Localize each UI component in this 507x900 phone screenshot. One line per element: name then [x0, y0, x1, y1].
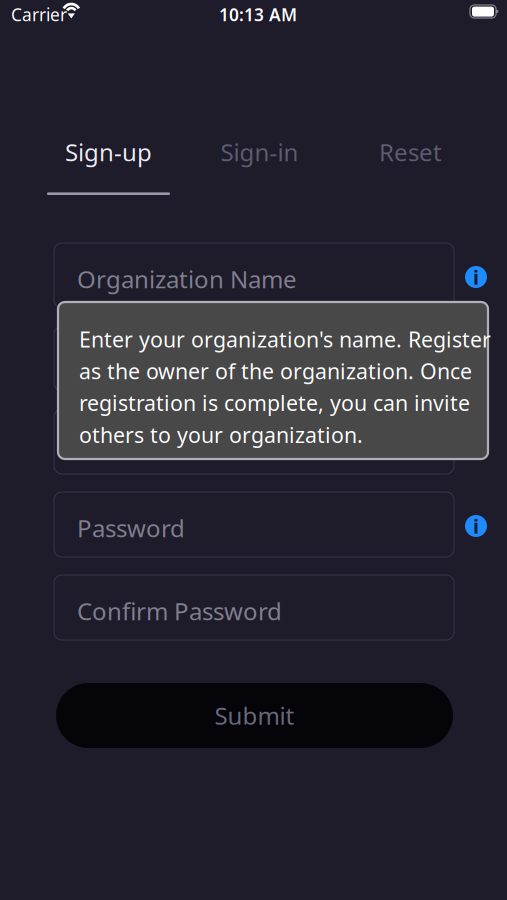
staticText: i	[473, 264, 479, 290]
button[interactable]: Reset	[335, 137, 486, 195]
staticText: Enter your organization's name. Register…	[79, 325, 491, 449]
button[interactable]: More information	[462, 512, 490, 540]
staticText: Password	[77, 512, 185, 544]
staticText: Sign-in	[220, 136, 298, 168]
staticText: Organization Name	[77, 263, 297, 295]
button[interactable]: More information	[462, 263, 490, 291]
button[interactable]: Confirm Password	[54, 575, 454, 640]
staticText: Email	[77, 346, 137, 378]
button[interactable]: Submit	[56, 683, 453, 748]
button[interactable]: Sign-in	[184, 137, 335, 195]
staticText: i	[473, 513, 479, 539]
button[interactable]: Email	[54, 326, 454, 391]
button[interactable]: Sign-up	[33, 137, 184, 195]
staticText: Sign-up	[65, 136, 152, 168]
button[interactable]: Phone Number	[54, 409, 454, 474]
staticText: Confirm Password	[77, 595, 282, 627]
staticText: Submit	[214, 700, 294, 731]
staticText: 10:13 AM	[219, 3, 297, 26]
staticText: Carrier	[11, 3, 67, 26]
button[interactable]: Password	[54, 492, 454, 557]
staticText: Phone Number	[77, 429, 251, 461]
button[interactable]: Organization Name	[54, 243, 454, 308]
staticText: Reset	[379, 136, 442, 168]
